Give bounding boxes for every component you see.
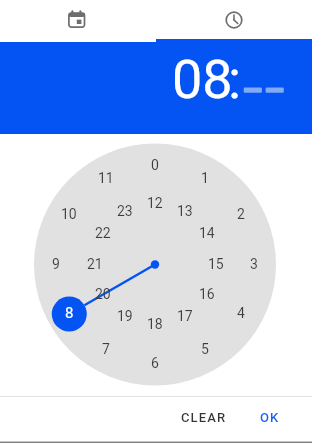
staticText: 18: [147, 316, 163, 332]
button[interactable]: 1: [190, 166, 220, 190]
staticText: 2: [237, 206, 245, 222]
button[interactable]: 08: [0, 42, 312, 134]
staticText: :: [228, 48, 242, 111]
button[interactable]: 0: [140, 153, 170, 177]
staticText: 6: [151, 355, 159, 371]
button[interactable]: 9: [41, 252, 71, 276]
button[interactable]: 21: [80, 252, 110, 276]
button[interactable]: [0, 0, 156, 42]
button[interactable]: CLEAR: [172, 401, 236, 434]
staticText: 9: [52, 256, 60, 272]
staticText: 15: [208, 256, 224, 272]
button[interactable]: 20: [88, 282, 118, 306]
staticText: 19: [117, 308, 133, 324]
button[interactable]: 3: [239, 252, 269, 276]
staticText: 12: [147, 195, 163, 211]
button[interactable]: 2: [226, 202, 256, 226]
staticText: 23: [117, 203, 133, 219]
staticText: CLEAR: [181, 410, 227, 425]
button[interactable]: OK: [250, 401, 290, 434]
staticText: 7: [102, 341, 110, 357]
button[interactable]: 15: [201, 252, 231, 276]
staticText: 13: [177, 203, 193, 219]
button[interactable]: 23: [110, 199, 140, 223]
staticText: 20: [95, 286, 111, 302]
button[interactable]: 16: [192, 282, 222, 306]
button[interactable]: 12: [140, 191, 170, 215]
staticText: 17: [177, 308, 193, 324]
staticText: 16: [199, 286, 215, 302]
staticText: 3: [250, 256, 258, 272]
button[interactable]: 7: [91, 337, 121, 361]
button[interactable]: 13: [170, 199, 200, 223]
staticText: 08: [172, 48, 233, 111]
button[interactable]: [156, 0, 312, 42]
staticText: 22: [95, 225, 111, 241]
button[interactable]: 10: [54, 202, 84, 226]
button[interactable]: 17: [170, 304, 200, 328]
staticText: 8: [65, 304, 74, 322]
staticText: 4: [237, 305, 245, 321]
button[interactable]: 8: [54, 301, 84, 325]
button[interactable]: 4: [226, 301, 256, 325]
staticText: OK: [260, 410, 280, 425]
button[interactable]: 22: [88, 221, 118, 245]
staticText: 5: [201, 341, 209, 357]
button[interactable]: 5: [190, 337, 220, 361]
button[interactable]: 11: [91, 166, 121, 190]
button[interactable]: 6: [140, 351, 170, 375]
staticText: 21: [87, 256, 103, 272]
button[interactable]: 19: [110, 304, 140, 328]
button[interactable]: 14: [192, 221, 222, 245]
staticText: 0: [151, 157, 159, 173]
button[interactable]: 18: [140, 312, 170, 336]
staticText: 14: [199, 225, 215, 241]
staticText: 10: [61, 206, 77, 222]
staticText: 1: [201, 170, 209, 186]
staticText: 11: [98, 170, 114, 186]
